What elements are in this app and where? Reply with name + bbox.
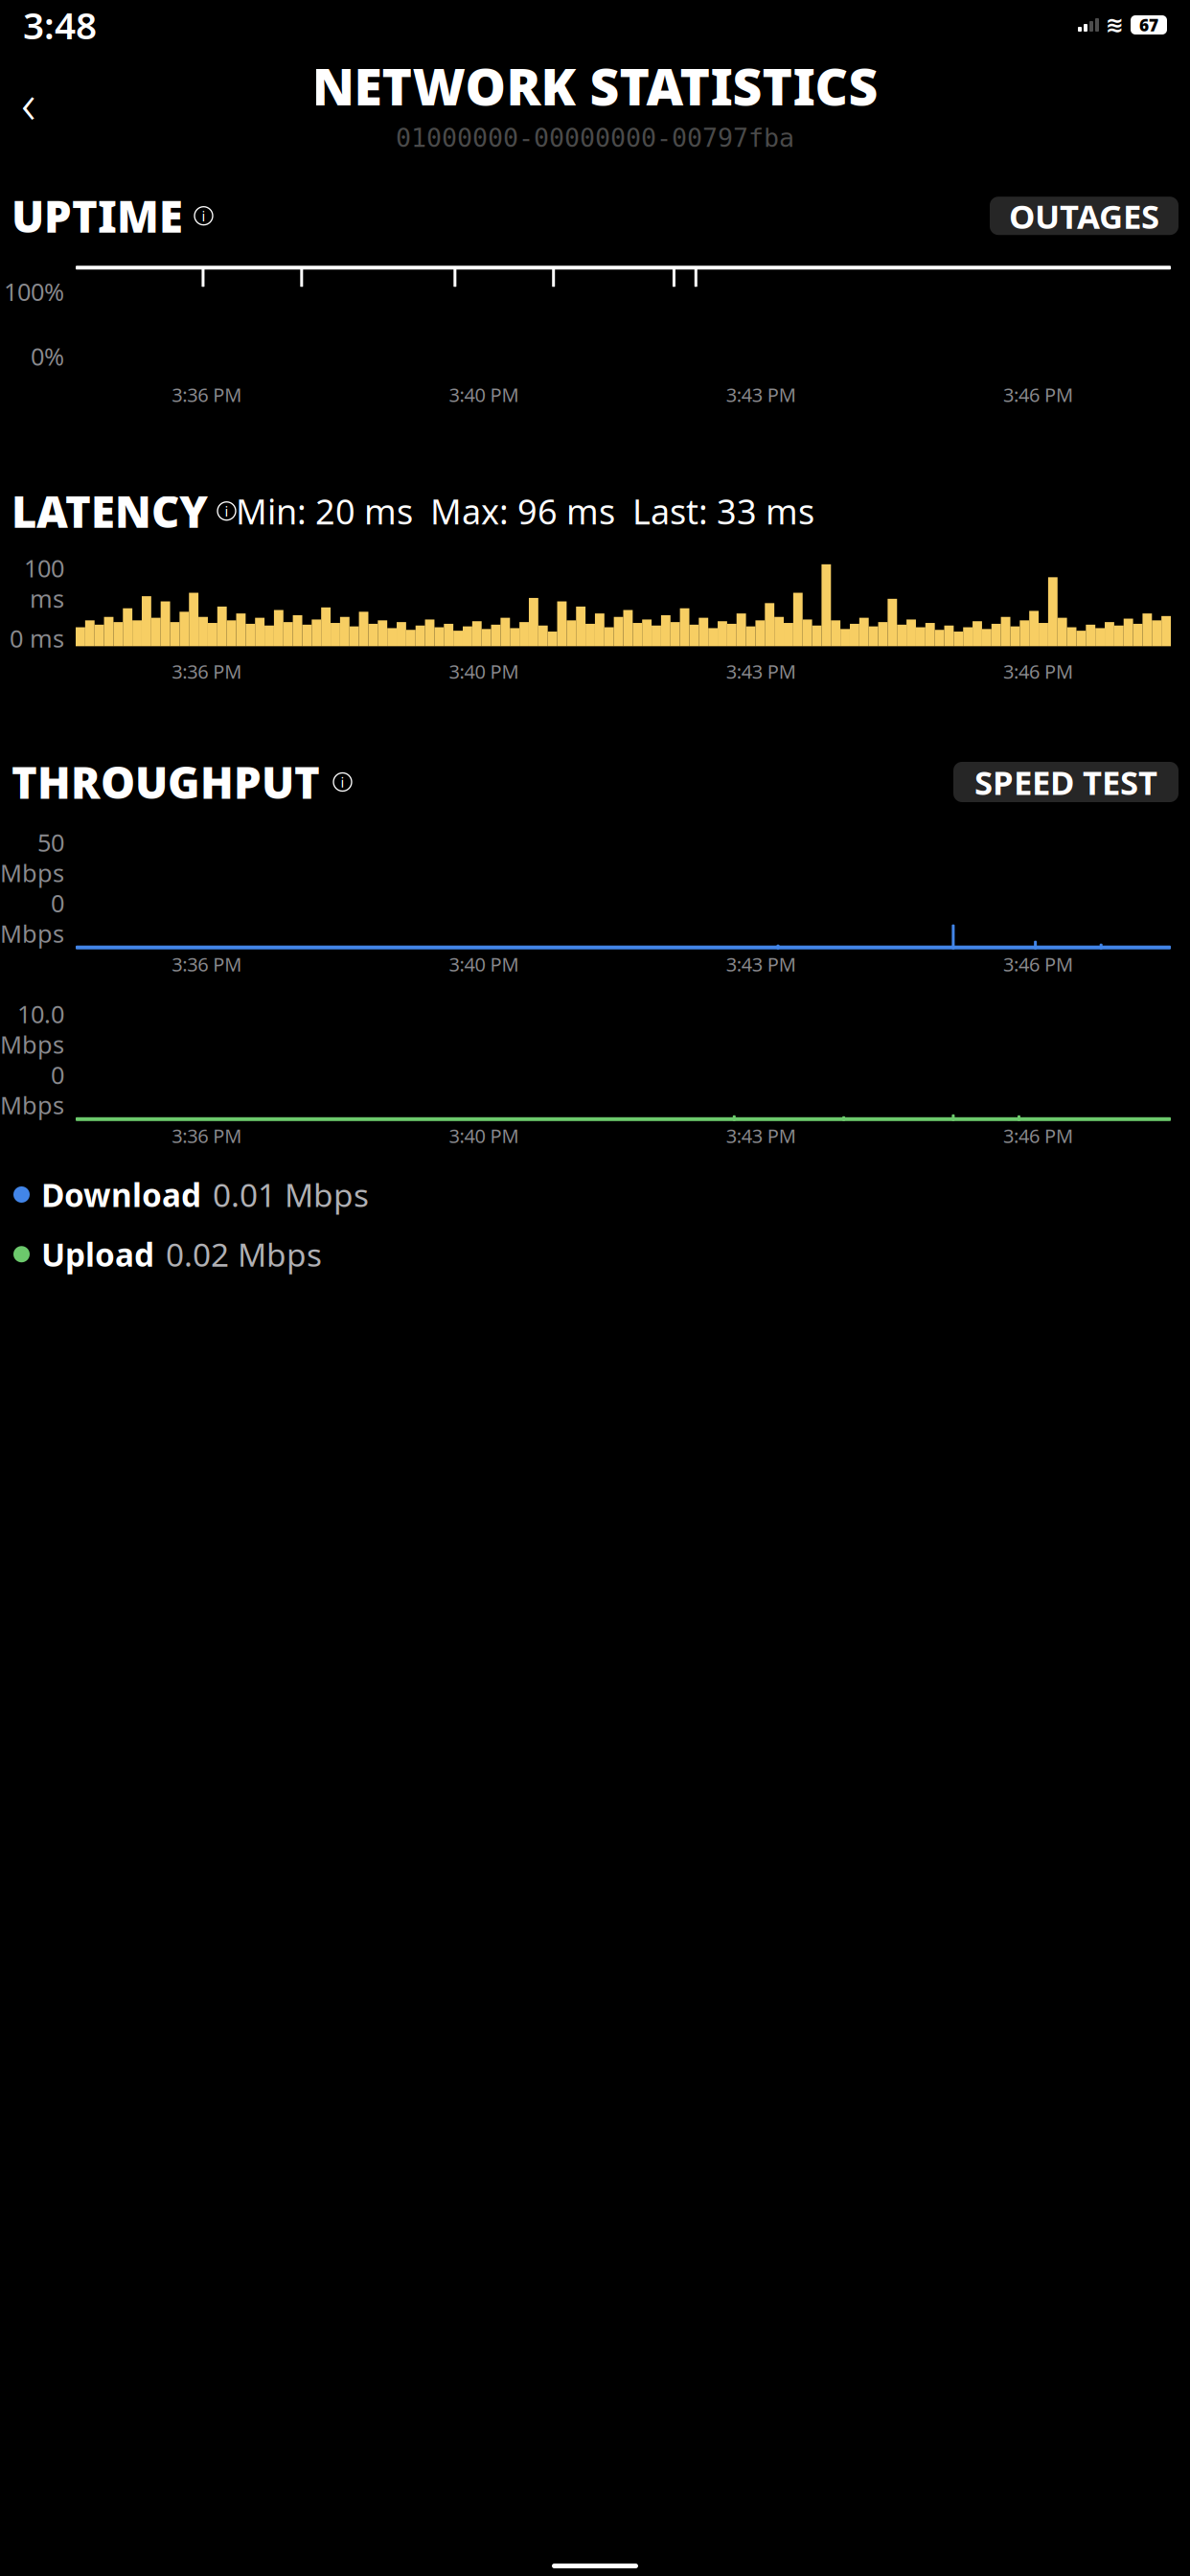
staticText: 3:40 PM xyxy=(449,659,519,684)
staticText: i xyxy=(225,502,229,520)
staticText: 3:43 PM xyxy=(726,1123,796,1148)
staticText: 3:36 PM xyxy=(172,659,242,684)
staticText: SPEED TEST xyxy=(974,760,1157,804)
staticText: ‹ xyxy=(21,65,36,139)
staticText: i xyxy=(202,207,206,225)
staticText: 01000000-00000000-00797fba xyxy=(396,123,794,152)
staticText: ms xyxy=(30,582,64,614)
staticText: 3:36 PM xyxy=(172,1123,242,1148)
staticText: 0 xyxy=(51,1058,64,1091)
staticText: 50 xyxy=(37,826,64,858)
staticText: Upload xyxy=(41,1233,154,1275)
staticText: Mbps xyxy=(0,856,64,889)
staticText: 0.02 Mbps xyxy=(166,1233,322,1275)
staticText: 3:36 PM xyxy=(172,382,242,407)
staticText: 3:43 PM xyxy=(726,382,796,407)
staticText: THROUGHPUT xyxy=(11,753,320,811)
staticText: 100% xyxy=(4,275,64,308)
staticText: 0 xyxy=(51,887,64,919)
staticText: Mbps xyxy=(0,1028,64,1060)
staticText: ≋ xyxy=(1106,13,1124,37)
staticText: 3:40 PM xyxy=(449,382,519,407)
staticText: UPTIME xyxy=(11,187,183,245)
staticText: 0 ms xyxy=(10,622,64,654)
staticText: 100 xyxy=(24,552,64,584)
staticText: 3:43 PM xyxy=(726,951,796,977)
staticText: 3:40 PM xyxy=(449,951,519,977)
button[interactable]: Back xyxy=(4,77,54,127)
staticText: Mbps xyxy=(0,917,64,949)
button[interactable]: SPEED TEST xyxy=(953,762,1179,802)
staticText: 3:36 PM xyxy=(172,951,242,977)
staticText: 3:46 PM xyxy=(1003,951,1073,977)
staticText: NETWORK STATISTICS xyxy=(312,52,878,120)
staticText: LATENCY xyxy=(11,482,208,540)
staticText: 3:40 PM xyxy=(449,1123,519,1148)
staticText: 3:43 PM xyxy=(726,659,796,684)
staticText: 3:48 xyxy=(23,0,97,49)
staticText: 0.01 Mbps xyxy=(213,1173,369,1216)
staticText: 3:46 PM xyxy=(1003,382,1073,407)
staticText: i xyxy=(341,773,344,791)
staticText: 3:46 PM xyxy=(1003,659,1073,684)
staticText: 67 xyxy=(1139,14,1158,36)
staticText: Mbps xyxy=(0,1089,64,1121)
staticText: Download xyxy=(41,1173,201,1216)
staticText: OUTAGES xyxy=(1009,194,1159,238)
button[interactable]: OUTAGES xyxy=(990,197,1179,235)
staticText: 10.0 xyxy=(17,998,64,1030)
staticText: 3:46 PM xyxy=(1003,1123,1073,1148)
staticText: Min: 20 ms Max: 96 ms Last: 33 ms xyxy=(236,488,814,534)
staticText: 0% xyxy=(31,340,64,372)
